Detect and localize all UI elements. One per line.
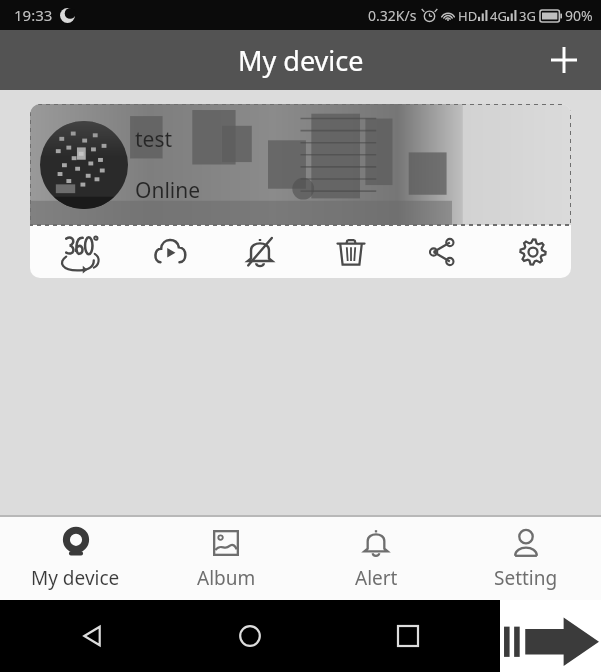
staticText: My device bbox=[31, 565, 120, 591]
button[interactable]: Back bbox=[70, 614, 114, 658]
button[interactable]: 360 degree view bbox=[56, 228, 104, 276]
button[interactable]: Recents bbox=[386, 614, 430, 658]
button[interactable]: My device bbox=[0, 517, 151, 600]
staticText: 4G bbox=[490, 7, 507, 25]
button[interactable]: Share bbox=[418, 228, 466, 276]
staticText: Online bbox=[135, 176, 201, 205]
button[interactable]: Delete bbox=[327, 228, 375, 276]
button[interactable]: Mute notifications bbox=[236, 228, 284, 276]
button[interactable]: Alert bbox=[301, 517, 451, 600]
button[interactable]: Home bbox=[228, 614, 272, 658]
button[interactable]: test bbox=[30, 104, 571, 278]
staticText: 0.32K/s bbox=[368, 6, 417, 25]
staticText: HD bbox=[458, 7, 478, 25]
button[interactable]: Album bbox=[151, 517, 301, 600]
button[interactable]: Cloud playback bbox=[146, 228, 194, 276]
staticText: Setting bbox=[494, 565, 558, 591]
staticText: 3G bbox=[519, 7, 536, 25]
staticText: Album bbox=[197, 565, 256, 591]
staticText: 90% bbox=[565, 6, 593, 25]
button[interactable]: Setting bbox=[451, 517, 601, 600]
staticText: test bbox=[135, 125, 173, 154]
staticText: My device bbox=[238, 42, 364, 79]
staticText: Alert bbox=[355, 565, 398, 591]
button[interactable]: Add device bbox=[541, 37, 587, 83]
button[interactable]: Settings bbox=[509, 228, 557, 276]
staticText: 19:33 bbox=[14, 5, 53, 25]
